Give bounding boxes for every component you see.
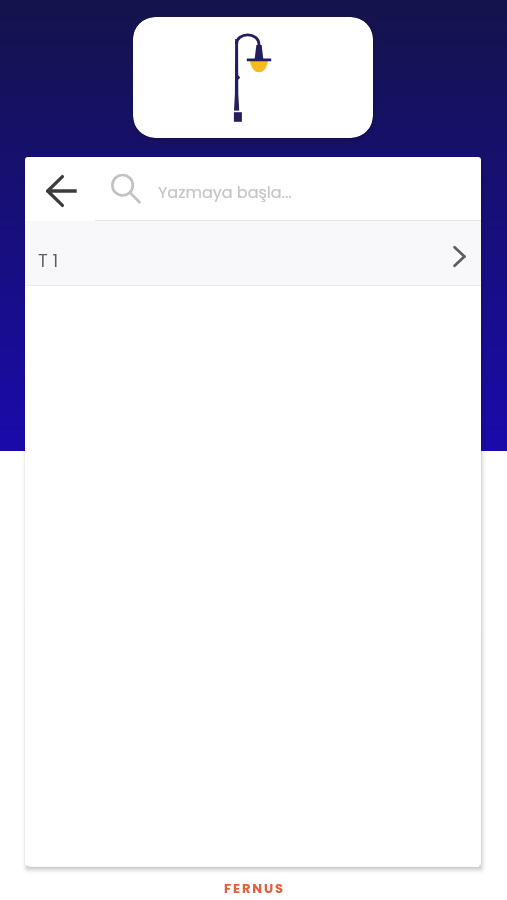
staticText: T 1 — [38, 248, 59, 273]
button[interactable]: Back — [38, 168, 84, 214]
staticText: Yazmaya başla... — [158, 181, 292, 203]
button[interactable]: T 1 — [25, 221, 481, 285]
staticText: FERNUS — [224, 879, 285, 897]
